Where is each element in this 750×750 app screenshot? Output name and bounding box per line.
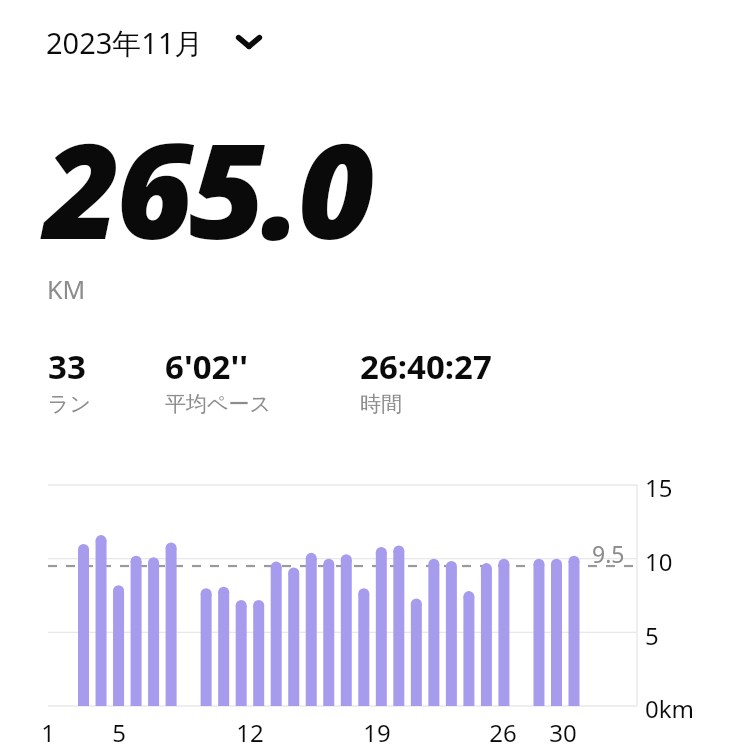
staticText: 6'02'' — [165, 344, 248, 389]
staticText: 1 — [41, 716, 55, 749]
staticText: ラン — [48, 391, 91, 417]
staticText: 時間 — [360, 391, 402, 417]
button[interactable]: 33 — [46, 344, 226, 428]
staticText: 265.0 — [44, 98, 371, 278]
staticText: 10 — [645, 545, 673, 578]
staticText: 5 — [112, 716, 126, 749]
staticText: 平均ペース — [165, 391, 271, 417]
staticText: 5 — [645, 619, 659, 652]
staticText: 19 — [363, 716, 391, 749]
staticText: 15 — [645, 471, 673, 504]
button[interactable]: 2023年11月 — [46, 20, 276, 64]
staticText: KM — [47, 272, 86, 306]
staticText: 9.5 — [592, 538, 625, 569]
staticText: 30 — [549, 716, 577, 749]
button[interactable]: 26:40:27 — [358, 344, 538, 428]
staticText: 33 — [48, 344, 86, 389]
staticText: 26:40:27 — [360, 344, 492, 389]
staticText: 2023年11月 — [46, 23, 204, 63]
other: Change month — [236, 32, 262, 52]
button[interactable]: 6'02'' — [163, 344, 343, 428]
staticText: 26 — [489, 716, 517, 749]
staticText: 12 — [236, 716, 264, 749]
staticText: 0km — [645, 692, 694, 725]
